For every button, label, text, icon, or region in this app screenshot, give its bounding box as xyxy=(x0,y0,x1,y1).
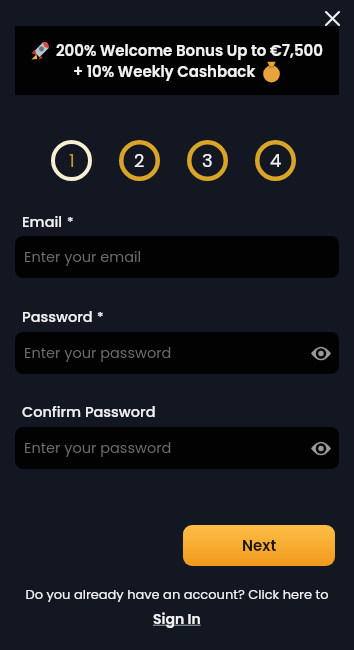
staticText: Next xyxy=(242,535,277,556)
staticText: Confirm Password xyxy=(22,402,156,422)
button[interactable]: Enter your email xyxy=(15,236,339,278)
button[interactable]: 3 xyxy=(187,140,228,181)
staticText: Password xyxy=(22,307,93,327)
button[interactable]: 200% Welcome Bonus Up to €7,500 xyxy=(15,26,339,95)
button[interactable]: 2 xyxy=(119,140,160,181)
staticText: Enter your password xyxy=(24,343,172,363)
staticText: * xyxy=(97,307,104,325)
button[interactable]: 1 xyxy=(51,140,92,181)
button[interactable]: Enter your password xyxy=(15,427,339,469)
staticText: 4 xyxy=(270,148,282,173)
button[interactable] xyxy=(318,4,346,32)
button[interactable]: 4 xyxy=(255,140,296,181)
staticText: Enter your password xyxy=(24,438,172,458)
button[interactable]: Enter your password xyxy=(15,332,339,374)
staticText: 1 xyxy=(69,148,75,173)
staticText: * xyxy=(67,212,74,230)
button[interactable]: Next xyxy=(183,525,335,566)
staticText: Do you already have an account? Click he… xyxy=(0,585,354,603)
staticText: Email xyxy=(22,212,63,232)
staticText: 3 xyxy=(202,148,213,173)
staticText: 2 xyxy=(134,148,145,173)
staticText: Enter your email xyxy=(24,247,142,267)
staticText: Sign In xyxy=(153,609,201,629)
staticText: 200% Welcome Bonus Up to €7,500 xyxy=(56,40,323,61)
button[interactable]: Sign In xyxy=(153,609,201,629)
staticText: + 10% Weekly Cashback xyxy=(73,61,256,82)
